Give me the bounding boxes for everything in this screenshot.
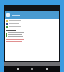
button[interactable] bbox=[5, 22, 59, 25]
button[interactable] bbox=[5, 25, 59, 28]
button[interactable]: Menu bbox=[6, 13, 10, 17]
button[interactable] bbox=[5, 19, 59, 22]
